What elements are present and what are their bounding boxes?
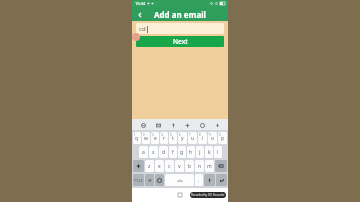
button[interactable]: Toolbar action 5 (213, 121, 221, 129)
button[interactable]: h (187, 146, 195, 158)
button[interactable]: l (214, 146, 222, 158)
button[interactable]: b (185, 160, 194, 172)
other: Cursor badge (132, 33, 140, 41)
button[interactable]: d (159, 146, 168, 158)
staticText: i (202, 135, 204, 142)
button[interactable] (165, 174, 194, 186)
staticText: 8 (199, 133, 201, 137)
staticText: n (198, 163, 202, 170)
staticText: 9 (209, 133, 211, 137)
staticText: a (142, 149, 145, 156)
button[interactable]: s (149, 146, 158, 158)
button[interactable]: Key (204, 174, 215, 186)
button[interactable]: Key (215, 160, 227, 172)
button[interactable]: f (169, 146, 177, 158)
button[interactable]: 3 (151, 132, 159, 144)
button[interactable]: x (155, 160, 164, 172)
staticText: y (181, 135, 184, 142)
staticText: e (154, 135, 157, 142)
button[interactable]: Key (155, 174, 164, 186)
button[interactable]: Key (145, 174, 154, 186)
button[interactable]: n (195, 160, 204, 172)
button[interactable]: cd (136, 23, 224, 34)
button[interactable]: . (195, 174, 203, 186)
staticText: h (189, 149, 193, 156)
button[interactable]: g (178, 146, 186, 158)
staticText: . (198, 177, 200, 184)
button[interactable]: Key (133, 174, 144, 186)
staticText: o (211, 135, 215, 142)
staticText: k (208, 149, 211, 156)
button[interactable]: k (205, 146, 213, 158)
staticText: Add an email (154, 9, 206, 20)
staticText: w (144, 135, 148, 142)
button[interactable]: Back (134, 9, 145, 20)
staticText: 0 (219, 133, 221, 137)
button[interactable]: Toolbar action 2 (169, 121, 177, 129)
staticText: 4 (161, 133, 163, 137)
staticText: v (178, 163, 181, 170)
staticText: 1 (134, 133, 136, 137)
button[interactable]: 6 (178, 132, 187, 144)
staticText: t (172, 135, 174, 142)
button[interactable]: j (196, 146, 204, 158)
button[interactable]: 7 (188, 132, 197, 144)
button[interactable]: 2 (142, 132, 150, 144)
button[interactable]: Toolbar action 3 (183, 121, 191, 129)
staticText: u (191, 135, 195, 142)
button[interactable]: Next (136, 36, 224, 47)
staticText: Recorded by DU Recorder (191, 193, 225, 197)
staticText: l (217, 149, 219, 156)
staticText: c (168, 163, 171, 170)
staticText: Next (173, 37, 188, 46)
button[interactable]: 9 (208, 132, 217, 144)
staticText: 2 (143, 133, 145, 137)
staticText: b (188, 163, 192, 170)
staticText: f (172, 149, 174, 156)
button[interactable]: v (175, 160, 184, 172)
staticText: 7 (189, 133, 191, 137)
staticText: q (135, 135, 139, 142)
button[interactable]: Toolbar action 1 (154, 121, 162, 129)
staticText: j (199, 149, 201, 156)
staticText: m (207, 163, 212, 170)
staticText: 5 (170, 133, 172, 137)
button[interactable]: m (205, 160, 214, 172)
staticText: g (180, 149, 184, 156)
staticText: p (221, 135, 225, 142)
button[interactable]: 0 (218, 132, 227, 144)
staticText: d (162, 149, 166, 156)
button[interactable]: a (139, 146, 148, 158)
staticText: 6 (179, 133, 181, 137)
button[interactable]: 5 (169, 132, 177, 144)
button[interactable]: Toolbar action 0 (139, 121, 147, 129)
button[interactable]: Home (178, 193, 182, 197)
staticText: r (163, 135, 166, 142)
button[interactable]: c (165, 160, 174, 172)
staticText: 10:34 (135, 1, 146, 6)
button[interactable]: 1 (133, 132, 141, 144)
button[interactable]: Key (216, 174, 227, 186)
staticText: s (152, 149, 155, 156)
staticText: z (148, 163, 151, 170)
staticText: अ (148, 177, 152, 183)
staticText: x (158, 163, 161, 170)
button[interactable]: 4 (160, 132, 168, 144)
button[interactable]: Toolbar action 4 (198, 121, 206, 129)
button[interactable]: Key (133, 160, 144, 172)
button[interactable]: z (145, 160, 154, 172)
staticText: !?123 (134, 178, 143, 183)
button[interactable]: 8 (198, 132, 207, 144)
staticText: cd (139, 25, 146, 33)
staticText: 3 (152, 133, 154, 137)
